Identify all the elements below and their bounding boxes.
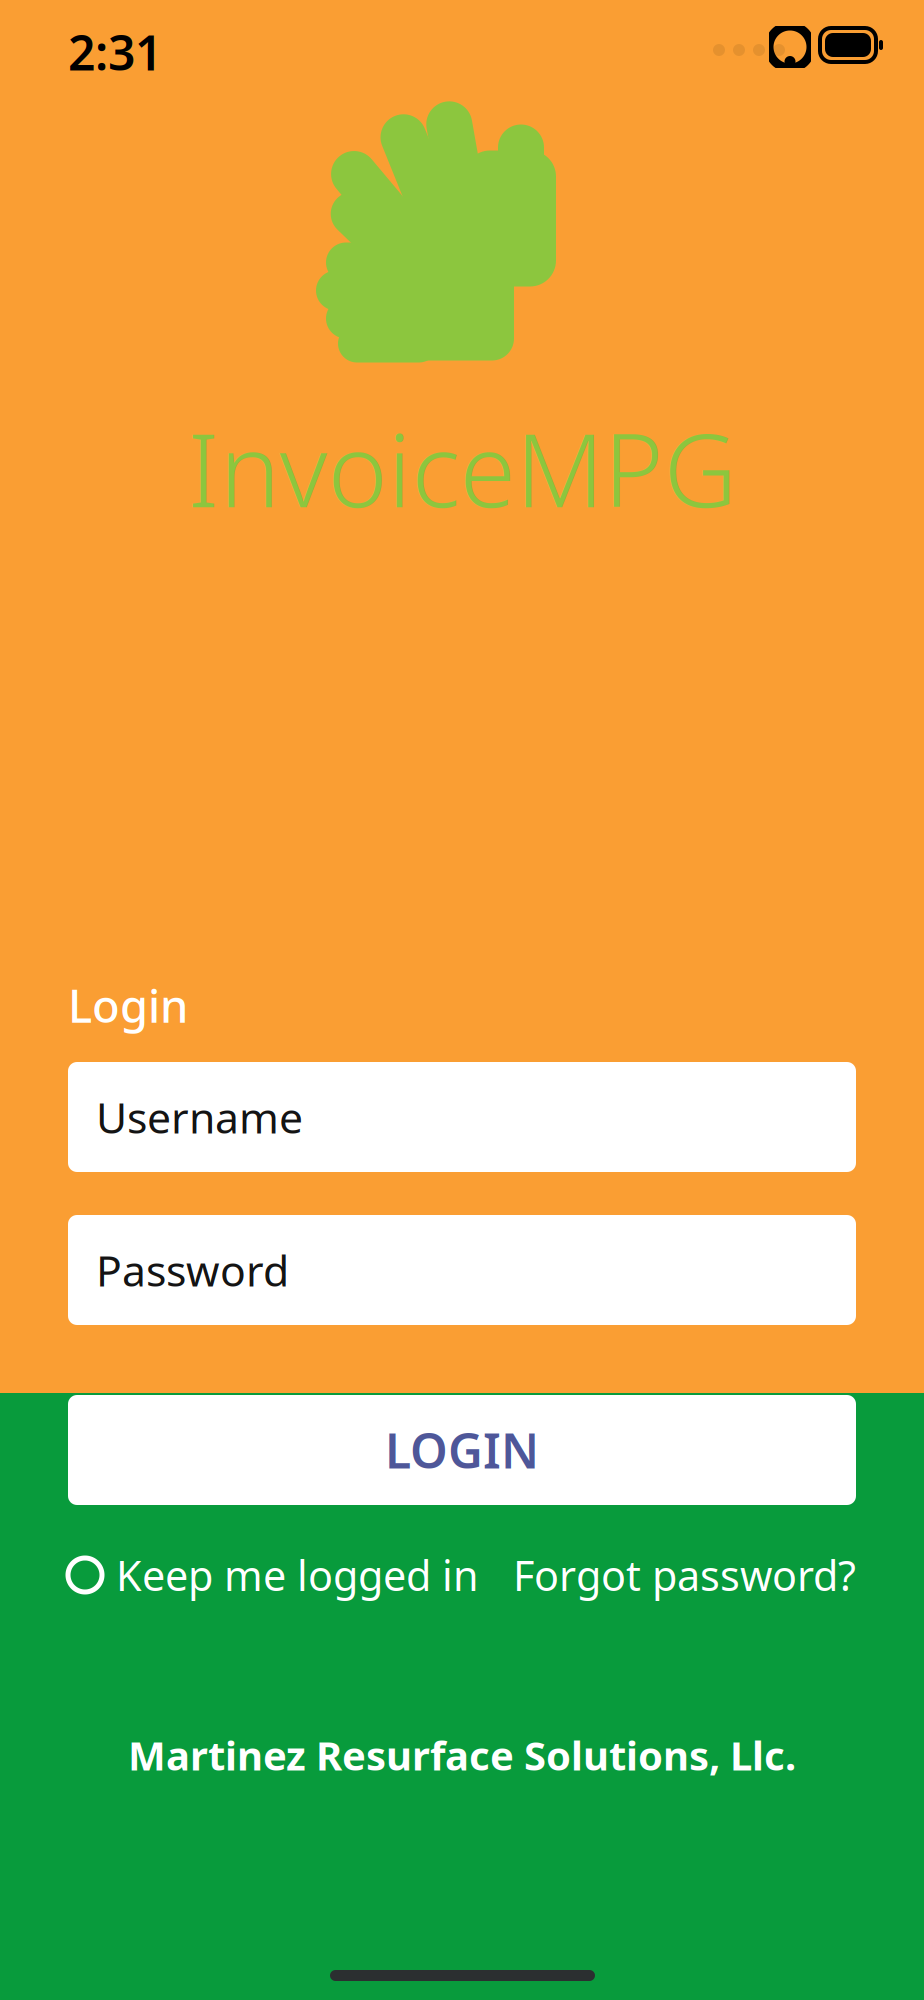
button[interactable]: Username xyxy=(68,1062,856,1172)
staticText: Forgot password? xyxy=(513,1548,856,1602)
button[interactable]: LOGIN xyxy=(68,1395,856,1505)
staticText: LOGIN xyxy=(385,1418,539,1482)
staticText: 2:31 xyxy=(68,20,162,84)
staticText: Login xyxy=(68,975,188,1035)
staticText: Martinez Resurface Solutions, Llc. xyxy=(128,1728,796,1781)
staticText: InvoiceMPG xyxy=(187,401,736,535)
staticText: Password xyxy=(96,1242,289,1298)
button[interactable]: Forgot password? xyxy=(513,1548,856,1602)
button[interactable]: Keep me logged in xyxy=(68,1548,479,1602)
button[interactable]: Password xyxy=(68,1215,856,1325)
staticText: Keep me logged in xyxy=(116,1548,479,1602)
staticText: Username xyxy=(96,1089,303,1145)
